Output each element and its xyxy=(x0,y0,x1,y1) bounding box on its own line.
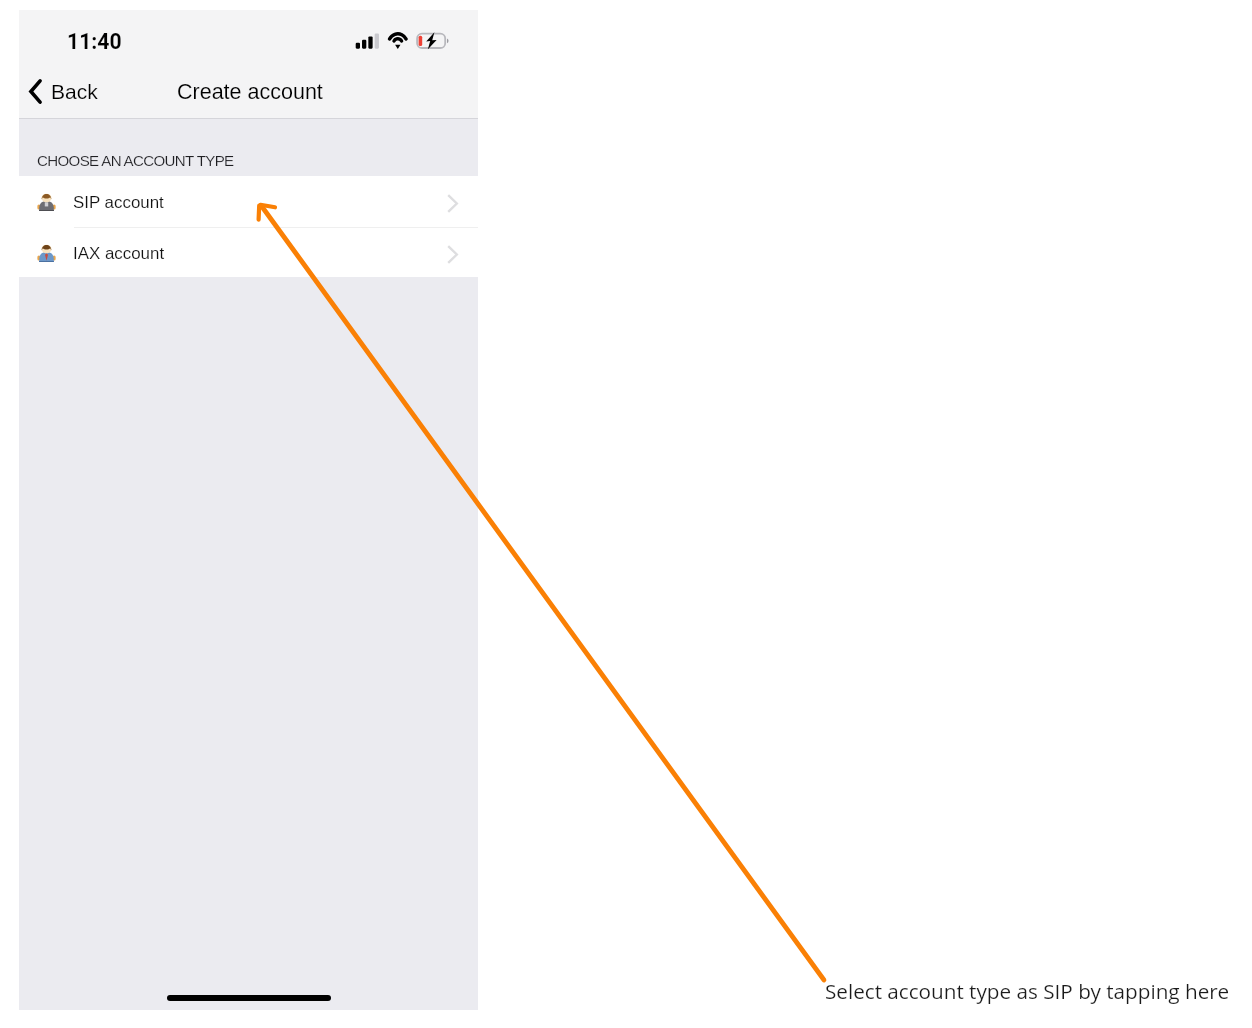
staticText: IAX account xyxy=(73,244,165,263)
staticText: CHOOSE AN ACCOUNT TYPE xyxy=(37,152,234,169)
staticText: Select account type as SIP by tapping he… xyxy=(825,977,1229,1005)
other: Open IAX account xyxy=(447,245,458,264)
staticText: Create account xyxy=(177,80,323,104)
button[interactable]: Back xyxy=(19,77,110,106)
staticText: Back xyxy=(51,80,98,103)
button[interactable]: IAX account xyxy=(19,228,478,277)
staticText: SIP account xyxy=(73,193,164,212)
staticText: 11:40 xyxy=(67,29,122,54)
button[interactable]: SIP account xyxy=(19,176,478,227)
other: Open SIP account xyxy=(447,194,458,213)
